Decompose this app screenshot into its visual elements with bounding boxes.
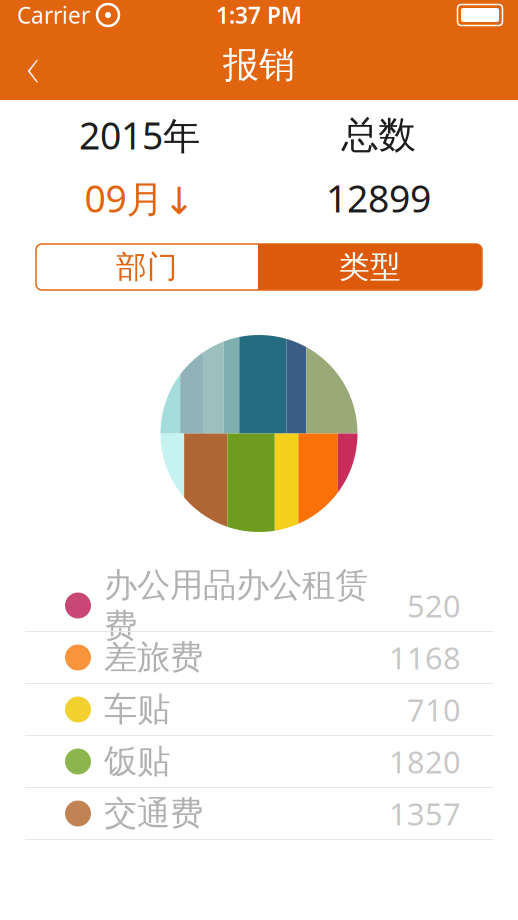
button[interactable]: 车贴 [0, 684, 518, 736]
staticText: 类型 [339, 248, 401, 286]
staticText: 1168 [389, 637, 461, 678]
button[interactable]: Back [0, 30, 66, 100]
staticText: 09月↓ [84, 173, 194, 223]
staticText: 1357 [389, 793, 461, 834]
staticText: 1:37 PM [216, 0, 302, 30]
button[interactable]: 差旅费 [0, 632, 518, 684]
staticText: 总数 [341, 112, 415, 158]
staticText: 饭贴 [104, 741, 170, 782]
staticText: 12899 [326, 173, 431, 223]
staticText: 520 [407, 585, 461, 626]
staticText: 交通费 [104, 793, 203, 834]
staticText: ‹ [26, 26, 39, 104]
staticText: 部门 [116, 248, 178, 286]
button[interactable]: 09月↓ [20, 168, 498, 228]
staticText: 710 [407, 689, 461, 730]
button[interactable]: 交通费 [0, 788, 518, 840]
staticText: 车贴 [104, 689, 170, 730]
button[interactable]: 饭贴 [0, 736, 518, 788]
staticText: 1820 [389, 741, 461, 782]
staticText: Carrier [17, 0, 90, 30]
staticText: 办公用品办公租赁费 [104, 565, 368, 646]
staticText: 报销 [223, 43, 295, 87]
button[interactable]: 类型 [258, 244, 482, 290]
button[interactable]: 部门 [36, 244, 258, 290]
staticText: 差旅费 [104, 637, 203, 678]
staticText: 2015年 [79, 110, 200, 160]
button[interactable]: 办公用品办公租赁费 [0, 580, 518, 632]
